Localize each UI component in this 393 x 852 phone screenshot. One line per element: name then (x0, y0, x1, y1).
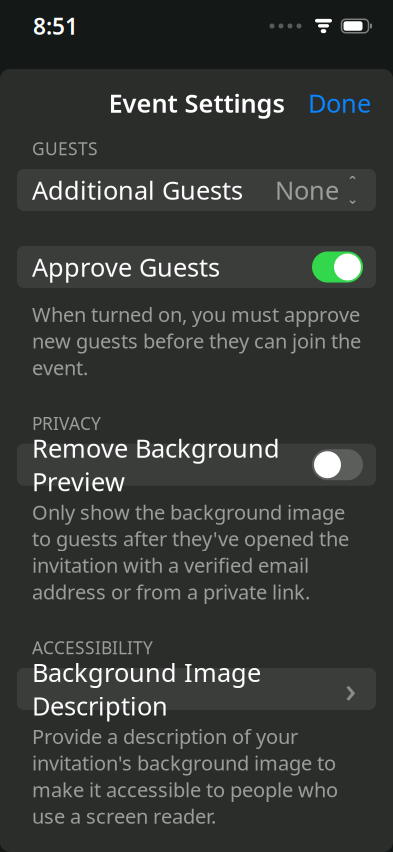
staticText: Remove Background Preview (32, 431, 280, 498)
staticText: None (275, 173, 339, 207)
staticText: Event Settings (108, 86, 284, 120)
button[interactable]: Additional Guests (17, 169, 376, 211)
button[interactable]: Background Image Description (17, 668, 376, 710)
staticText: Done (308, 86, 371, 120)
button[interactable]: Approve Guests (17, 246, 376, 288)
staticText: Background Image Description (32, 655, 261, 723)
staticText: ACCESSIBILITY (32, 636, 153, 659)
staticText: When turned on, you must approve new gue… (32, 301, 361, 381)
staticText: ⌃ (347, 173, 358, 188)
staticText: Only show the background image to guests… (32, 499, 349, 605)
staticText: GUESTS (32, 137, 98, 160)
staticText: ⌄ (347, 191, 358, 207)
staticText: 8:51 (33, 11, 78, 41)
staticText: Additional Guests (32, 173, 243, 207)
staticText: PRIVACY (32, 412, 101, 435)
staticText: › (345, 666, 356, 712)
button[interactable]: Done (300, 77, 379, 129)
button[interactable]: Remove Background Preview (17, 444, 376, 486)
staticText: Approve Guests (32, 250, 220, 284)
staticText: Provide a description of your invitation… (32, 723, 338, 829)
